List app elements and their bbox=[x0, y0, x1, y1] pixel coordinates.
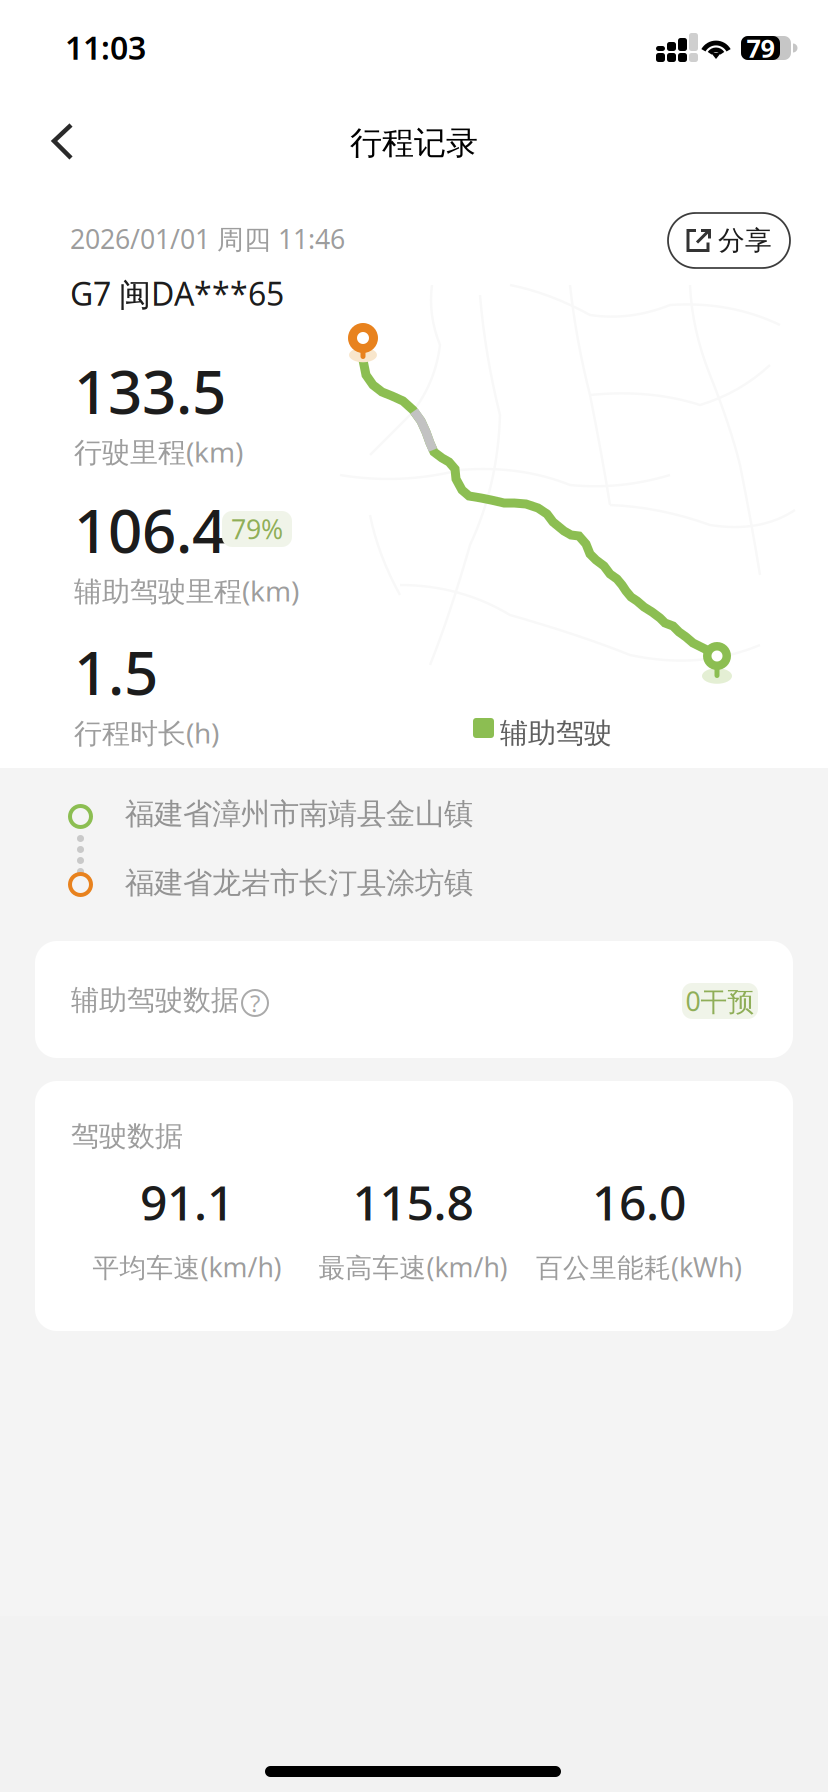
staticText: 16.0 bbox=[592, 1170, 686, 1234]
staticText: 2026/01/01 周四 11:46 bbox=[70, 221, 345, 256]
staticText: 11:03 bbox=[65, 26, 146, 68]
staticText: 百公里能耗(kWh) bbox=[536, 1249, 742, 1285]
staticText: 驾驶数据 bbox=[71, 1119, 183, 1153]
staticText: 辅助驾驶数据 bbox=[71, 983, 239, 1017]
staticText: 辅助驾驶里程(km) bbox=[74, 572, 299, 609]
button[interactable]: 辅助驾驶数据 bbox=[35, 941, 793, 1058]
staticText: 辅助驾驶 bbox=[500, 716, 612, 750]
staticText: 79 bbox=[746, 31, 774, 65]
staticText: 行程时长(h) bbox=[74, 714, 219, 751]
staticText: 91.1 bbox=[140, 1170, 234, 1234]
staticText: G7 闽DA***65 bbox=[70, 272, 284, 315]
staticText: 平均车速(km/h) bbox=[92, 1249, 281, 1285]
staticText: 行驶里程(km) bbox=[74, 433, 243, 470]
staticText: 福建省漳州市南靖县金山镇 bbox=[125, 796, 473, 832]
staticText: 最高车速(km/h) bbox=[318, 1249, 507, 1285]
staticText: 106.4 bbox=[74, 490, 226, 570]
button[interactable]: 分享 bbox=[668, 213, 790, 268]
staticText: 行程记录 bbox=[350, 123, 478, 163]
button[interactable]: Back bbox=[32, 96, 118, 190]
staticText: 133.5 bbox=[74, 351, 226, 431]
staticText: 福建省龙岩市长汀县涂坊镇 bbox=[125, 865, 473, 901]
staticText: 79% bbox=[231, 511, 283, 547]
staticText: ? bbox=[250, 987, 260, 1019]
staticText: 1.5 bbox=[74, 632, 158, 712]
staticText: 分享 bbox=[718, 224, 772, 257]
staticText: 115.8 bbox=[352, 1170, 473, 1234]
staticText: 0干预 bbox=[685, 983, 754, 1019]
